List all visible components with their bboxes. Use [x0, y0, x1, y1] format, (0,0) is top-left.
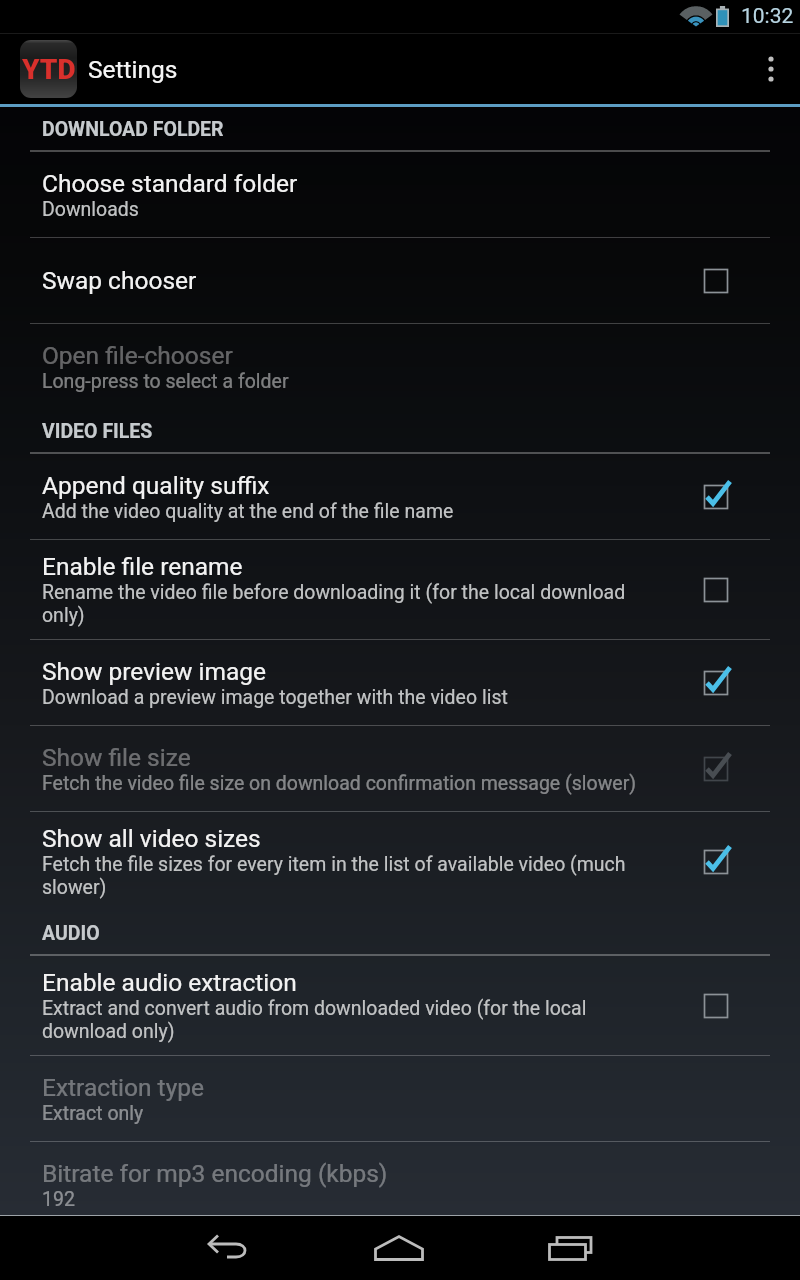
- button[interactable]: Show all video sizes: [0, 812, 800, 911]
- button[interactable]: Unchecked: [692, 256, 742, 306]
- button[interactable]: Checked: [692, 744, 742, 794]
- staticText: Extraction type: [42, 1073, 204, 1102]
- staticText: 192: [42, 1188, 75, 1211]
- button[interactable]: Enable file rename: [0, 540, 800, 640]
- staticText: Show preview image: [42, 657, 266, 686]
- staticText: Choose standard folder: [42, 169, 298, 198]
- button[interactable]: Open file-chooser: [0, 324, 800, 409]
- button[interactable]: Unchecked: [692, 565, 742, 615]
- button[interactable]: Append quality suffix: [0, 454, 800, 540]
- button[interactable]: Enable audio extraction: [0, 956, 800, 1056]
- button[interactable]: Swap chooser: [0, 238, 800, 324]
- button[interactable]: Extraction type: [0, 1056, 800, 1142]
- staticText: Enable file rename: [42, 552, 243, 581]
- staticText: AUDIO: [42, 922, 100, 945]
- staticText: Fetch the file sizes for every item in t…: [42, 853, 642, 899]
- button[interactable]: Checked: [692, 658, 742, 708]
- staticText: Long-press to select a folder: [42, 370, 289, 393]
- button[interactable]: Checked: [692, 837, 742, 887]
- button[interactable]: Back: [194, 1216, 266, 1280]
- staticText: Show file size: [42, 743, 191, 772]
- button[interactable]: More options: [742, 34, 800, 104]
- staticText: DOWNLOAD FOLDER: [42, 118, 224, 141]
- button[interactable]: Home: [364, 1216, 436, 1280]
- staticText: YTD: [22, 53, 76, 86]
- button[interactable]: Choose standard folder: [0, 152, 800, 238]
- staticText: Show all video sizes: [42, 824, 261, 853]
- staticText: Add the video quality at the end of the …: [42, 500, 454, 523]
- staticText: 10:32: [741, 4, 794, 29]
- staticText: Download a preview image together with t…: [42, 686, 508, 709]
- staticText: VIDEO FILES: [42, 420, 153, 443]
- staticText: Downloads: [42, 198, 139, 221]
- button[interactable]: Recent apps: [534, 1216, 606, 1280]
- button[interactable]: Checked: [692, 472, 742, 522]
- staticText: Append quality suffix: [42, 471, 270, 500]
- staticText: Swap chooser: [42, 266, 197, 295]
- button[interactable]: Show preview image: [0, 640, 800, 726]
- button[interactable]: Unchecked: [692, 981, 742, 1031]
- staticText: Rename the video file before downloading…: [42, 581, 642, 627]
- staticText: Open file-chooser: [42, 341, 233, 370]
- staticText: Fetch the video file size on download co…: [42, 772, 637, 795]
- staticText: Enable audio extraction: [42, 968, 297, 997]
- staticText: Extract only: [42, 1102, 144, 1125]
- button[interactable]: Bitrate for mp3 encoding (kbps): [0, 1142, 800, 1215]
- staticText: Extract and convert audio from downloade…: [42, 997, 642, 1043]
- staticText: Bitrate for mp3 encoding (kbps): [42, 1159, 388, 1188]
- button[interactable]: Show file size: [0, 726, 800, 812]
- staticText: Settings: [88, 55, 178, 84]
